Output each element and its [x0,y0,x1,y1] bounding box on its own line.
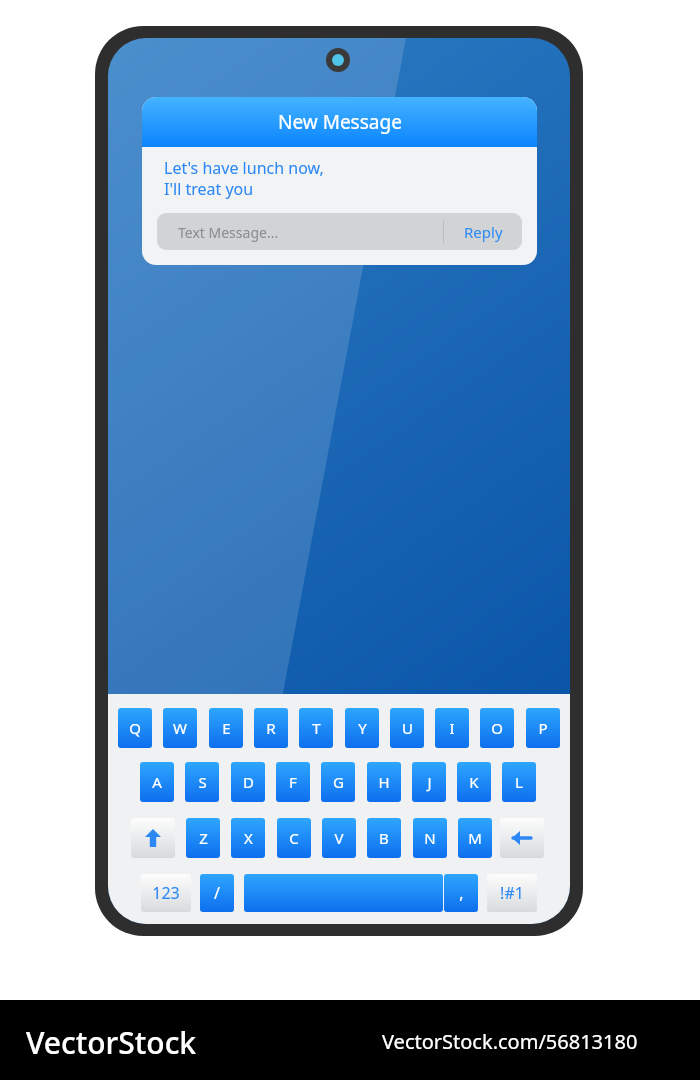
staticText: G [333,772,344,792]
staticText: H [378,772,390,792]
staticText: F [289,772,297,792]
button[interactable]: 123 [141,874,191,912]
button[interactable]: Space [244,874,443,912]
button[interactable]: S [185,762,219,802]
staticText: T [312,718,321,738]
button[interactable]: M [458,818,492,858]
staticText: B [379,828,389,848]
staticText: O [491,718,503,738]
button[interactable]: Text Message... [157,213,522,250]
staticText: W [173,718,187,738]
button[interactable]: G [321,762,355,802]
staticText: I [449,718,455,738]
staticText: Z [199,828,208,848]
staticText: L [515,772,523,792]
other: Camera [326,48,350,72]
button[interactable]: H [367,762,401,802]
button[interactable]: Shift [131,818,175,858]
button[interactable]: !#1 [487,874,537,912]
staticText: Q [129,718,141,738]
staticText: 123 [152,882,180,904]
staticText: M [468,828,482,848]
button[interactable]: Reply [444,213,522,250]
staticText: Let's have lunch now, I'll treat you [164,157,324,200]
button[interactable]: L [502,762,536,802]
staticText: K [469,772,479,792]
button[interactable]: A [140,762,174,802]
button[interactable]: W [163,708,197,748]
staticText: Text Message... [178,223,279,242]
staticText: P [538,718,548,738]
staticText: X [244,828,253,848]
staticText: / [214,882,220,904]
button[interactable]: E [209,708,243,748]
button[interactable]: C [277,818,311,858]
staticText: V [334,828,344,848]
staticText: , [459,882,464,904]
button[interactable]: J [412,762,446,802]
button[interactable]: Y [345,708,379,748]
button[interactable]: I [435,708,469,748]
button[interactable]: R [254,708,288,748]
button[interactable]: Backspace [500,818,544,858]
staticText: VectorStock [26,1022,197,1063]
button[interactable]: K [457,762,491,802]
button[interactable]: V [322,818,356,858]
staticText: Reply [464,222,503,242]
button[interactable]: T [299,708,333,748]
staticText: E [222,718,231,738]
staticText: S [198,772,207,792]
staticText: U [402,718,413,738]
staticText: R [266,718,276,738]
staticText: D [243,772,254,792]
button[interactable]: / [200,874,234,912]
button[interactable]: Q [118,708,152,748]
staticText: J [427,772,432,792]
staticText: C [289,828,299,848]
button[interactable]: , [444,874,478,912]
button[interactable]: New Message [142,97,537,265]
staticText: N [424,828,436,848]
staticText: !#1 [500,882,524,904]
button[interactable]: D [231,762,265,802]
button[interactable]: U [390,708,424,748]
button[interactable]: P [526,708,560,748]
button[interactable]: Z [186,818,220,858]
staticText: VectorStock.com/56813180 [382,1028,638,1055]
button[interactable]: X [231,818,265,858]
staticText: A [152,772,162,792]
button[interactable]: F [276,762,310,802]
button[interactable]: N [413,818,447,858]
staticText: New Message [278,109,402,135]
button[interactable]: B [367,818,401,858]
staticText: Y [358,718,367,738]
button[interactable]: O [480,708,514,748]
